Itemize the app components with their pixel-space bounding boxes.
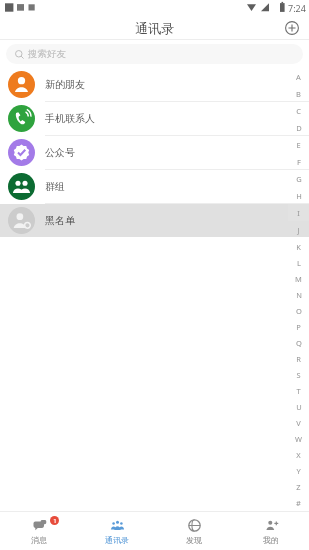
staticText: S: [296, 370, 301, 380]
staticText: #: [296, 498, 301, 508]
button[interactable]: 公众号: [0, 136, 309, 169]
button[interactable]: 手机联系人: [0, 102, 309, 135]
button[interactable]: 发现: [155, 512, 232, 550]
button[interactable]: 群组: [0, 170, 309, 203]
staticText: R: [296, 354, 301, 364]
staticText: N: [296, 290, 302, 300]
staticText: G: [296, 174, 302, 184]
staticText: Z: [296, 482, 301, 492]
staticText: E: [296, 140, 301, 150]
staticText: 群组: [45, 180, 65, 193]
button[interactable]: 通讯录: [78, 512, 155, 550]
staticText: 搜索好友: [28, 48, 66, 60]
staticText: W: [295, 434, 302, 444]
button[interactable]: 搜索好友: [6, 44, 303, 64]
staticText: X: [296, 450, 301, 460]
staticText: D: [296, 123, 302, 133]
button[interactable]: Add contact: [281, 17, 303, 39]
staticText: 黑名单: [45, 214, 75, 227]
button[interactable]: 黑名单: [0, 204, 309, 237]
staticText: 通讯录: [135, 20, 174, 36]
staticText: O: [296, 306, 302, 316]
staticText: B: [296, 89, 301, 99]
staticText: T: [296, 386, 301, 396]
staticText: I: [297, 208, 300, 218]
staticText: 新的朋友: [45, 78, 85, 91]
staticText: 发现: [186, 535, 202, 545]
staticText: A: [296, 72, 301, 82]
button[interactable]: 新的朋友: [0, 68, 309, 101]
button[interactable]: 我的: [232, 512, 309, 550]
staticText: 1: [53, 517, 57, 525]
staticText: Q: [296, 338, 302, 348]
staticText: 公众号: [45, 146, 75, 159]
staticText: P: [296, 322, 301, 332]
staticText: M: [295, 274, 302, 284]
staticText: Y: [296, 466, 301, 476]
staticText: L: [297, 258, 301, 268]
staticText: C: [296, 106, 301, 116]
staticText: V: [296, 418, 301, 428]
button[interactable]: Alphabet index: [288, 68, 309, 511]
staticText: 手机联系人: [45, 112, 95, 125]
staticText: U: [296, 402, 302, 412]
staticText: F: [297, 157, 301, 167]
staticText: 我的: [263, 535, 279, 545]
staticText: 消息: [31, 535, 47, 545]
staticText: 7:24: [288, 2, 306, 14]
button[interactable]: 1: [0, 512, 78, 550]
staticText: H: [296, 191, 302, 201]
staticText: 通讯录: [105, 535, 129, 545]
staticText: J: [297, 225, 300, 235]
staticText: K: [296, 242, 301, 252]
